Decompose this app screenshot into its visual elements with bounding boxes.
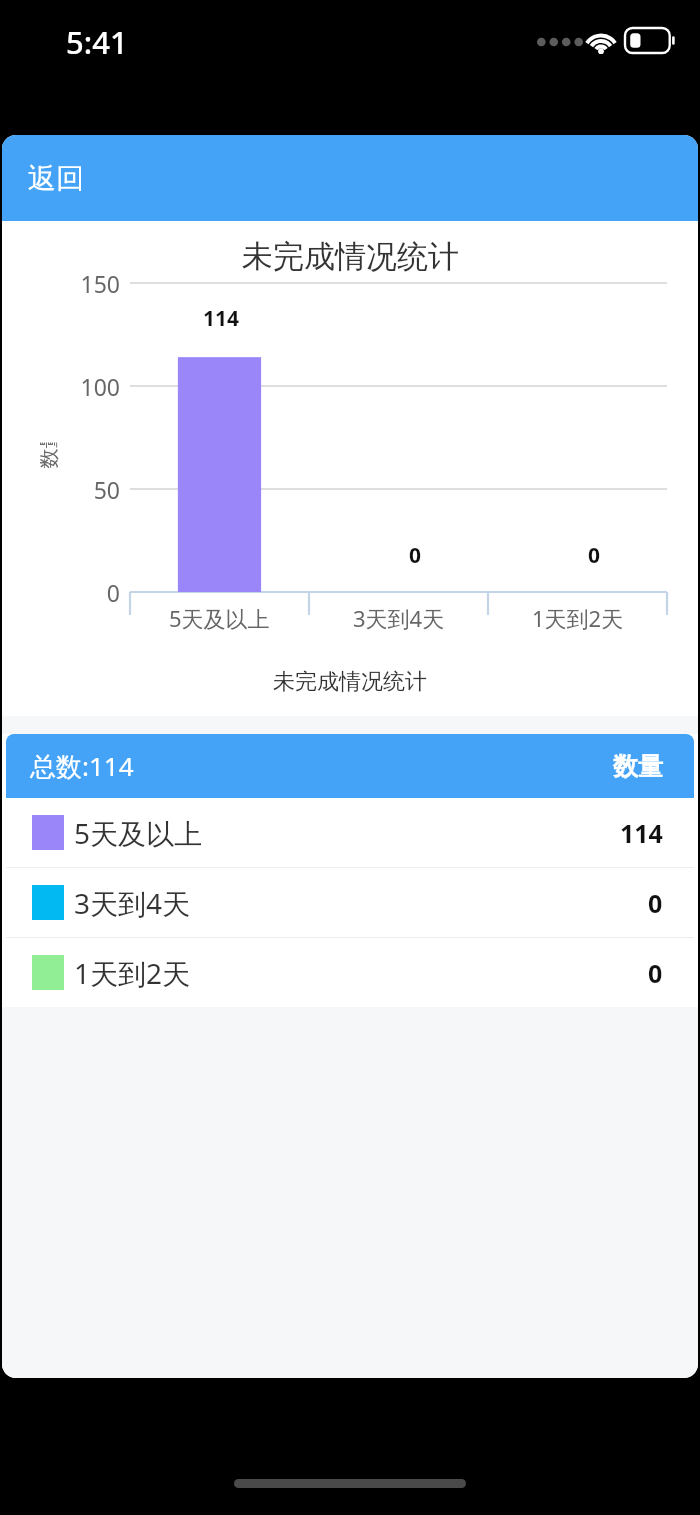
staticText: 0: [648, 956, 663, 990]
button[interactable]: 5天及以上: [6, 798, 694, 867]
staticText: 1天到2天: [74, 954, 648, 992]
staticText: 数量: [36, 442, 61, 468]
staticText: 114: [203, 304, 240, 333]
staticText: 1天到2天: [532, 603, 624, 633]
button[interactable]: 返回: [2, 135, 698, 221]
staticText: 数量: [613, 751, 663, 782]
staticText: 0: [588, 541, 601, 570]
button[interactable]: 1天到2天: [6, 938, 694, 1007]
staticText: 5天及以上: [74, 814, 620, 852]
staticText: 总数:114: [30, 748, 613, 784]
staticText: 返回: [28, 161, 84, 196]
staticText: 3天到4天: [353, 603, 445, 633]
other: Wi-Fi: [584, 25, 618, 54]
staticText: 5天及以上: [169, 603, 270, 633]
staticText: 0: [648, 886, 663, 920]
button[interactable]: 3天到4天: [6, 868, 694, 937]
staticText: 未完成情况统计: [242, 237, 459, 276]
staticText: 114: [620, 816, 663, 850]
staticText: 3天到4天: [74, 884, 648, 922]
staticText: 0: [409, 541, 422, 570]
staticText: 50: [93, 474, 120, 505]
other: Battery: [625, 28, 677, 53]
staticText: 150: [80, 268, 120, 299]
staticText: 100: [80, 371, 120, 402]
staticText: 0: [106, 577, 120, 608]
staticText: 5:41: [66, 21, 128, 63]
staticText: 未完成情况统计: [273, 668, 427, 696]
button[interactable]: 总数:114: [6, 734, 694, 798]
